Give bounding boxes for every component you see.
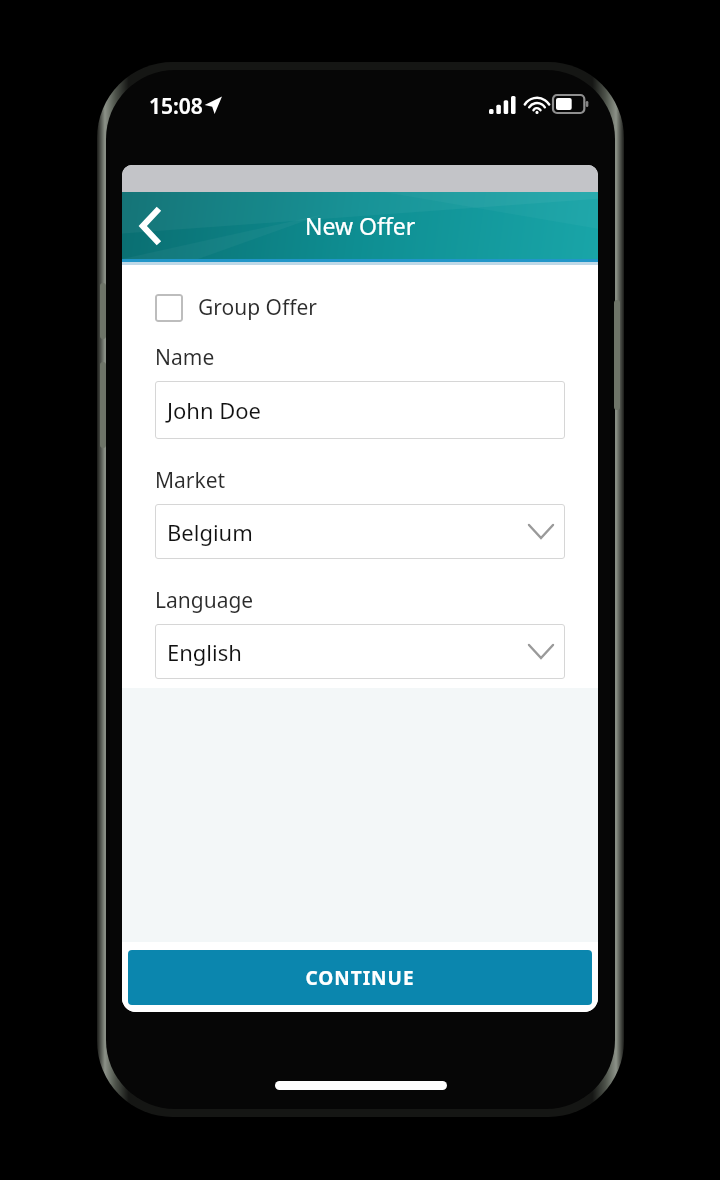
staticText: Name <box>155 343 215 372</box>
staticText: John Doe <box>167 395 262 425</box>
other: Expand <box>529 645 553 658</box>
staticText: CONTINUE <box>305 965 415 991</box>
staticText: Belgium <box>167 517 253 547</box>
staticText: Group Offer <box>198 293 317 322</box>
staticText: English <box>167 637 242 667</box>
button[interactable]: CONTINUE <box>128 950 592 1005</box>
other: Expand <box>529 525 553 538</box>
button[interactable]: English <box>155 624 565 679</box>
staticText: 15:08 <box>149 92 203 121</box>
button[interactable]: Group Offer <box>155 291 317 324</box>
staticText: Market <box>155 466 226 495</box>
staticText: Language <box>155 586 254 615</box>
button[interactable]: John Doe <box>155 381 565 439</box>
button[interactable]: Back <box>122 198 178 254</box>
button[interactable]: Belgium <box>155 504 565 559</box>
staticText: New Offer <box>305 210 416 241</box>
